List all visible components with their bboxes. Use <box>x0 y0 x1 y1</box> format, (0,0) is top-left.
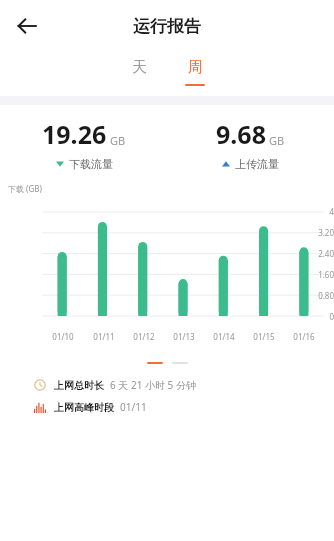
staticText: 周 <box>188 58 203 77</box>
staticText: 01/11 <box>120 400 147 414</box>
staticText: 6 天 21 小时 5 分钟 <box>110 378 196 392</box>
staticText: 01/13 <box>173 331 195 342</box>
button[interactable]: Back <box>6 5 48 47</box>
staticText: 4 <box>329 206 334 217</box>
staticText: 下载 (GB) <box>8 183 42 194</box>
staticText: GB <box>110 133 126 148</box>
staticText: 运行报告 <box>133 16 201 37</box>
staticText: 0 <box>329 311 334 322</box>
staticText: 天 <box>132 58 147 77</box>
staticText: 01/12 <box>133 331 155 342</box>
staticText: GB <box>269 133 285 148</box>
staticText: 19.26 <box>42 117 107 151</box>
staticText: 3.20 <box>318 227 334 238</box>
staticText: 下载流量 <box>69 157 113 171</box>
staticText: 01/10 <box>52 331 74 342</box>
button[interactable]: 天 <box>122 52 156 84</box>
staticText: 01/14 <box>213 331 235 342</box>
staticText: 2.40 <box>318 248 334 259</box>
button[interactable]: 周 <box>178 52 212 86</box>
button[interactable]: 上网高峰时段 <box>34 396 147 418</box>
staticText: 上网总时长 <box>54 379 104 392</box>
staticText: 上网高峰时段 <box>54 401 114 414</box>
staticText: 01/16 <box>293 331 315 342</box>
staticText: 9.68 <box>216 117 266 151</box>
staticText: 01/11 <box>93 331 115 342</box>
button[interactable]: 上网总时长 <box>34 374 196 396</box>
staticText: 01/15 <box>253 331 275 342</box>
staticText: 上传流量 <box>235 157 279 171</box>
staticText: 0.80 <box>318 290 334 301</box>
button[interactable]: Page 1 <box>147 362 163 364</box>
staticText: 1.60 <box>318 269 334 280</box>
